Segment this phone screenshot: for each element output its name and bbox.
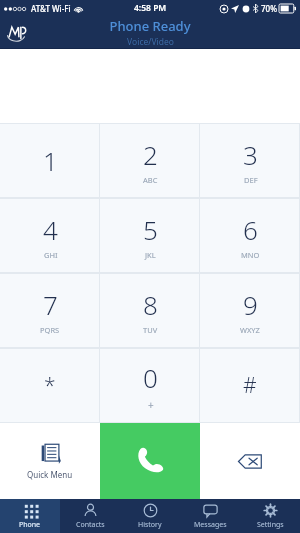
staticText: Phone [19,520,41,530]
staticText: 6 [243,212,258,247]
button[interactable]: Quick Menu [0,423,100,499]
staticText: Settings [257,520,284,530]
staticText: WXYZ [240,325,260,335]
staticText: 4:58 PM [134,2,167,14]
staticText: History [138,520,162,530]
button[interactable]: 2 [100,123,200,198]
staticText: ABC [143,175,158,185]
staticText: * [44,371,56,400]
button[interactable]: 1 [0,123,100,198]
staticText: GHI [44,250,58,260]
staticText: # [243,371,257,400]
staticText: 4 [43,212,58,247]
staticText: 2 [143,137,158,172]
other: Logo [7,21,29,43]
staticText: DEF [244,175,258,185]
staticText: Contacts [76,520,105,530]
staticText: 5 [143,212,158,247]
button[interactable]: Backspace [200,423,300,499]
button[interactable]: 4 [0,198,100,273]
button[interactable]: * [0,348,100,423]
staticText: PQRS [40,325,60,335]
staticText: Messages [194,520,227,530]
button[interactable]: 0 [100,348,200,423]
button[interactable]: 3 [200,123,300,198]
staticText: 70% [261,3,277,14]
staticText: TUV [143,325,158,335]
button[interactable]: Call [100,423,200,499]
staticText: 8 [143,287,158,322]
button[interactable]: 9 [200,273,300,348]
button[interactable]: 7 [0,273,100,348]
staticText: 0 [143,360,158,395]
staticText: + [148,398,154,412]
button[interactable]: Contacts [60,499,120,533]
staticText: MNO [241,250,260,260]
staticText: 1 [43,143,58,178]
button[interactable]: 6 [200,198,300,273]
staticText: 7 [43,287,58,322]
button[interactable]: History [120,499,180,533]
staticText: 9 [243,287,258,322]
button[interactable]: Phone [0,499,60,533]
staticText: AT&T Wi-Fi [31,3,71,14]
staticText: Phone Ready [109,17,191,35]
button[interactable]: 5 [100,198,200,273]
button[interactable]: Settings [240,499,300,533]
button[interactable]: 8 [100,273,200,348]
staticText: Quick Menu [27,469,73,480]
staticText: JKL [145,250,156,260]
button[interactable]: # [200,348,300,423]
button[interactable]: Messages [180,499,240,533]
staticText: Voice/Video [127,36,174,48]
staticText: 3 [243,137,258,172]
